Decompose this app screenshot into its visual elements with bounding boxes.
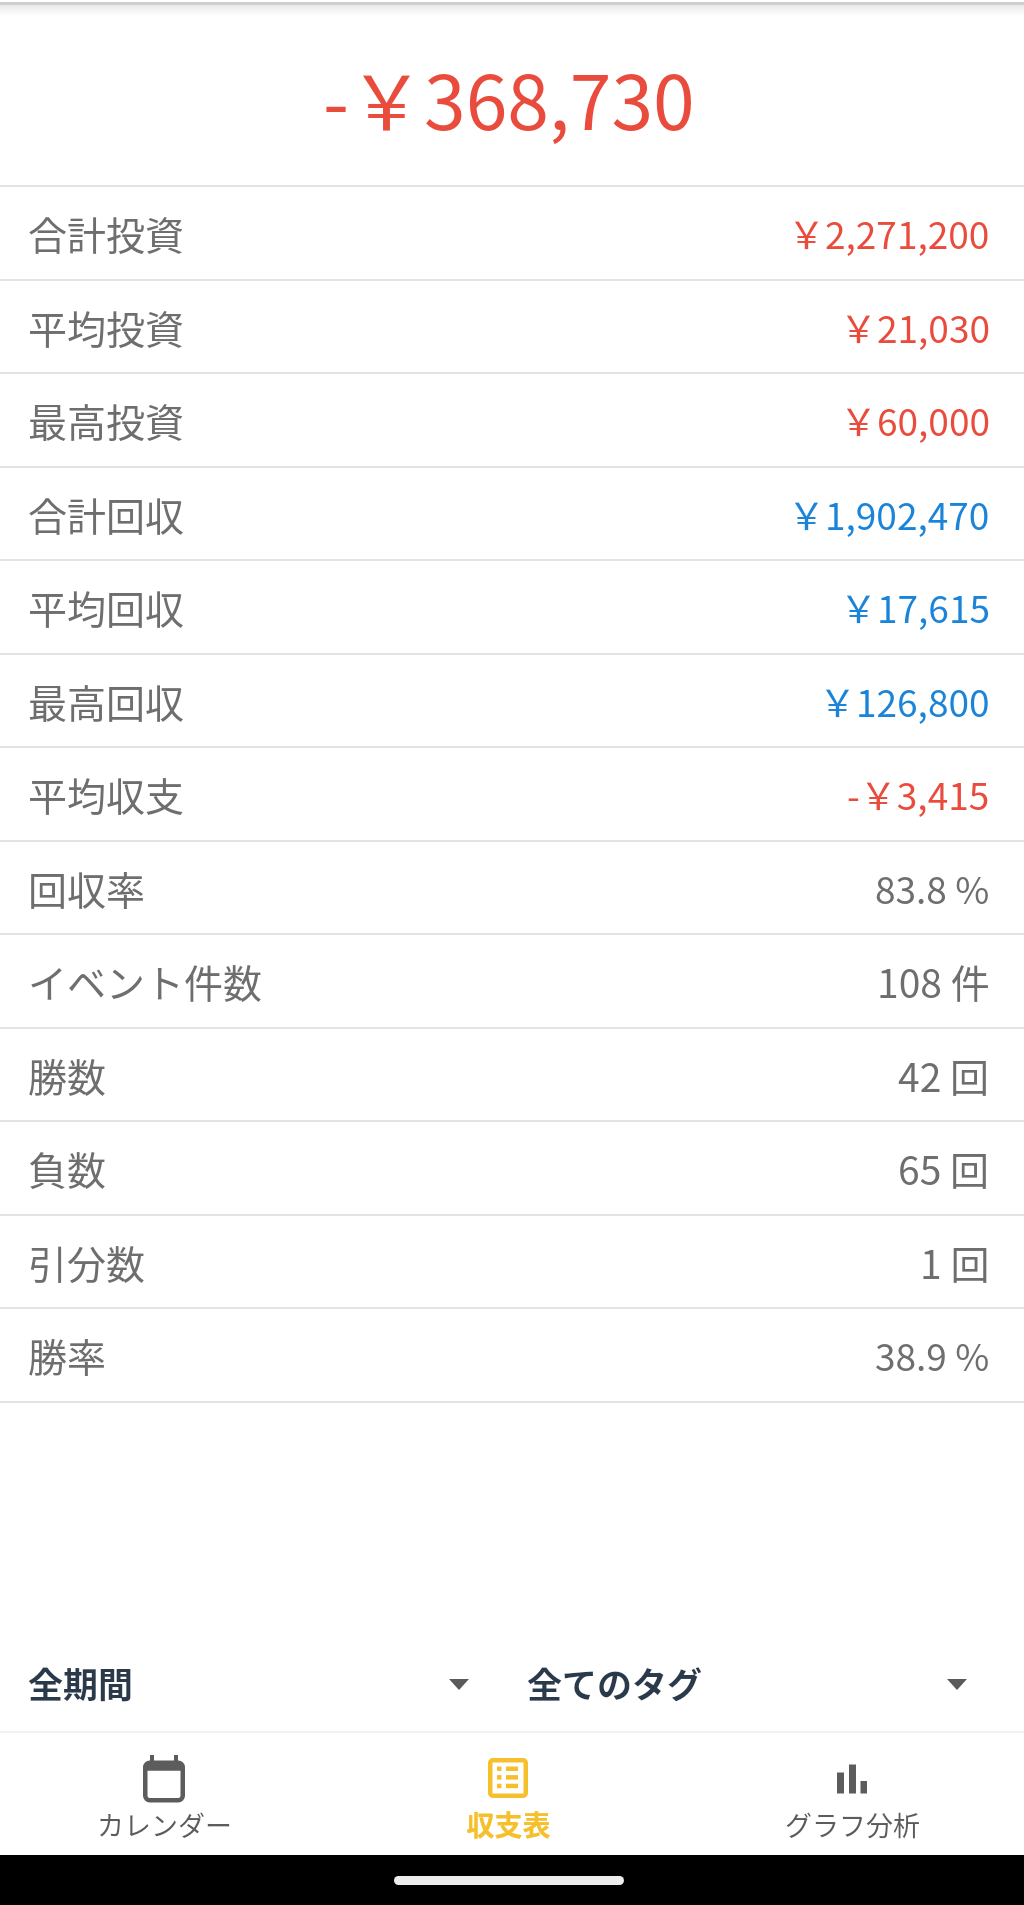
button[interactable]: 平均投資 [0, 281, 1024, 372]
button[interactable]: イベント件数 [0, 935, 1024, 1027]
button[interactable]: 合計投資 [0, 187, 1024, 279]
staticText: -￥3,415 [847, 767, 990, 821]
staticText: ￥2,271,200 [788, 206, 990, 260]
button[interactable]: 最高投資 [0, 374, 1024, 466]
button[interactable]: 勝数 [0, 1029, 1024, 1120]
staticText: 勝率 [28, 1327, 107, 1383]
staticText: ￥17,615 [840, 580, 990, 634]
staticText: ￥126,800 [819, 674, 990, 728]
button[interactable]: 勝率 [0, 1309, 1024, 1401]
staticText: 平均回収 [28, 579, 185, 635]
staticText: 最高投資 [28, 392, 185, 448]
button[interactable]: Calendar [0, 1733, 336, 1855]
staticText: イベント件数 [28, 953, 263, 1009]
staticText: 勝数 [28, 1047, 107, 1103]
other: Calendar [140, 1755, 188, 1803]
staticText: 108 件 [877, 953, 990, 1009]
staticText: 全期間 [28, 1657, 134, 1708]
button[interactable]: 負数 [0, 1122, 1024, 1214]
staticText: 全てのタグ [527, 1657, 703, 1708]
staticText: 平均収支 [28, 766, 185, 822]
staticText: 38.9 % [875, 1328, 990, 1382]
button[interactable]: 回収率 [0, 842, 1024, 933]
staticText: 合計投資 [28, 205, 185, 261]
button[interactable]: 全てのタグ [512, 1630, 1024, 1731]
staticText: 1 回 [920, 1234, 990, 1290]
button[interactable]: Graph analysis [680, 1733, 1024, 1855]
staticText: 合計回収 [28, 486, 185, 542]
button[interactable]: 平均回収 [0, 561, 1024, 653]
button[interactable]: 合計回収 [0, 468, 1024, 559]
other: Graph analysis [828, 1755, 876, 1803]
staticText: -￥368,730 [323, 43, 695, 152]
staticText: 引分数 [28, 1234, 146, 1290]
button[interactable]: 平均収支 [0, 748, 1024, 840]
button[interactable]: Balance sheet [336, 1733, 680, 1855]
other: Balance sheet [484, 1754, 532, 1802]
staticText: 83.8 % [875, 861, 990, 915]
staticText: ￥1,902,470 [788, 487, 990, 541]
staticText: 収支表 [466, 1804, 551, 1845]
staticText: 平均投資 [28, 299, 185, 355]
staticText: 回収率 [28, 860, 146, 916]
staticText: 65 回 [898, 1140, 990, 1196]
staticText: ￥21,030 [840, 300, 990, 354]
button[interactable]: 全期間 [0, 1630, 512, 1731]
staticText: グラフ分析 [785, 1805, 920, 1844]
staticText: 最高回収 [28, 673, 185, 729]
staticText: カレンダー [97, 1805, 232, 1844]
button[interactable]: 最高回収 [0, 655, 1024, 746]
staticText: 負数 [28, 1140, 107, 1196]
staticText: ￥60,000 [840, 393, 990, 447]
button[interactable]: 引分数 [0, 1216, 1024, 1307]
staticText: 42 回 [898, 1047, 990, 1103]
